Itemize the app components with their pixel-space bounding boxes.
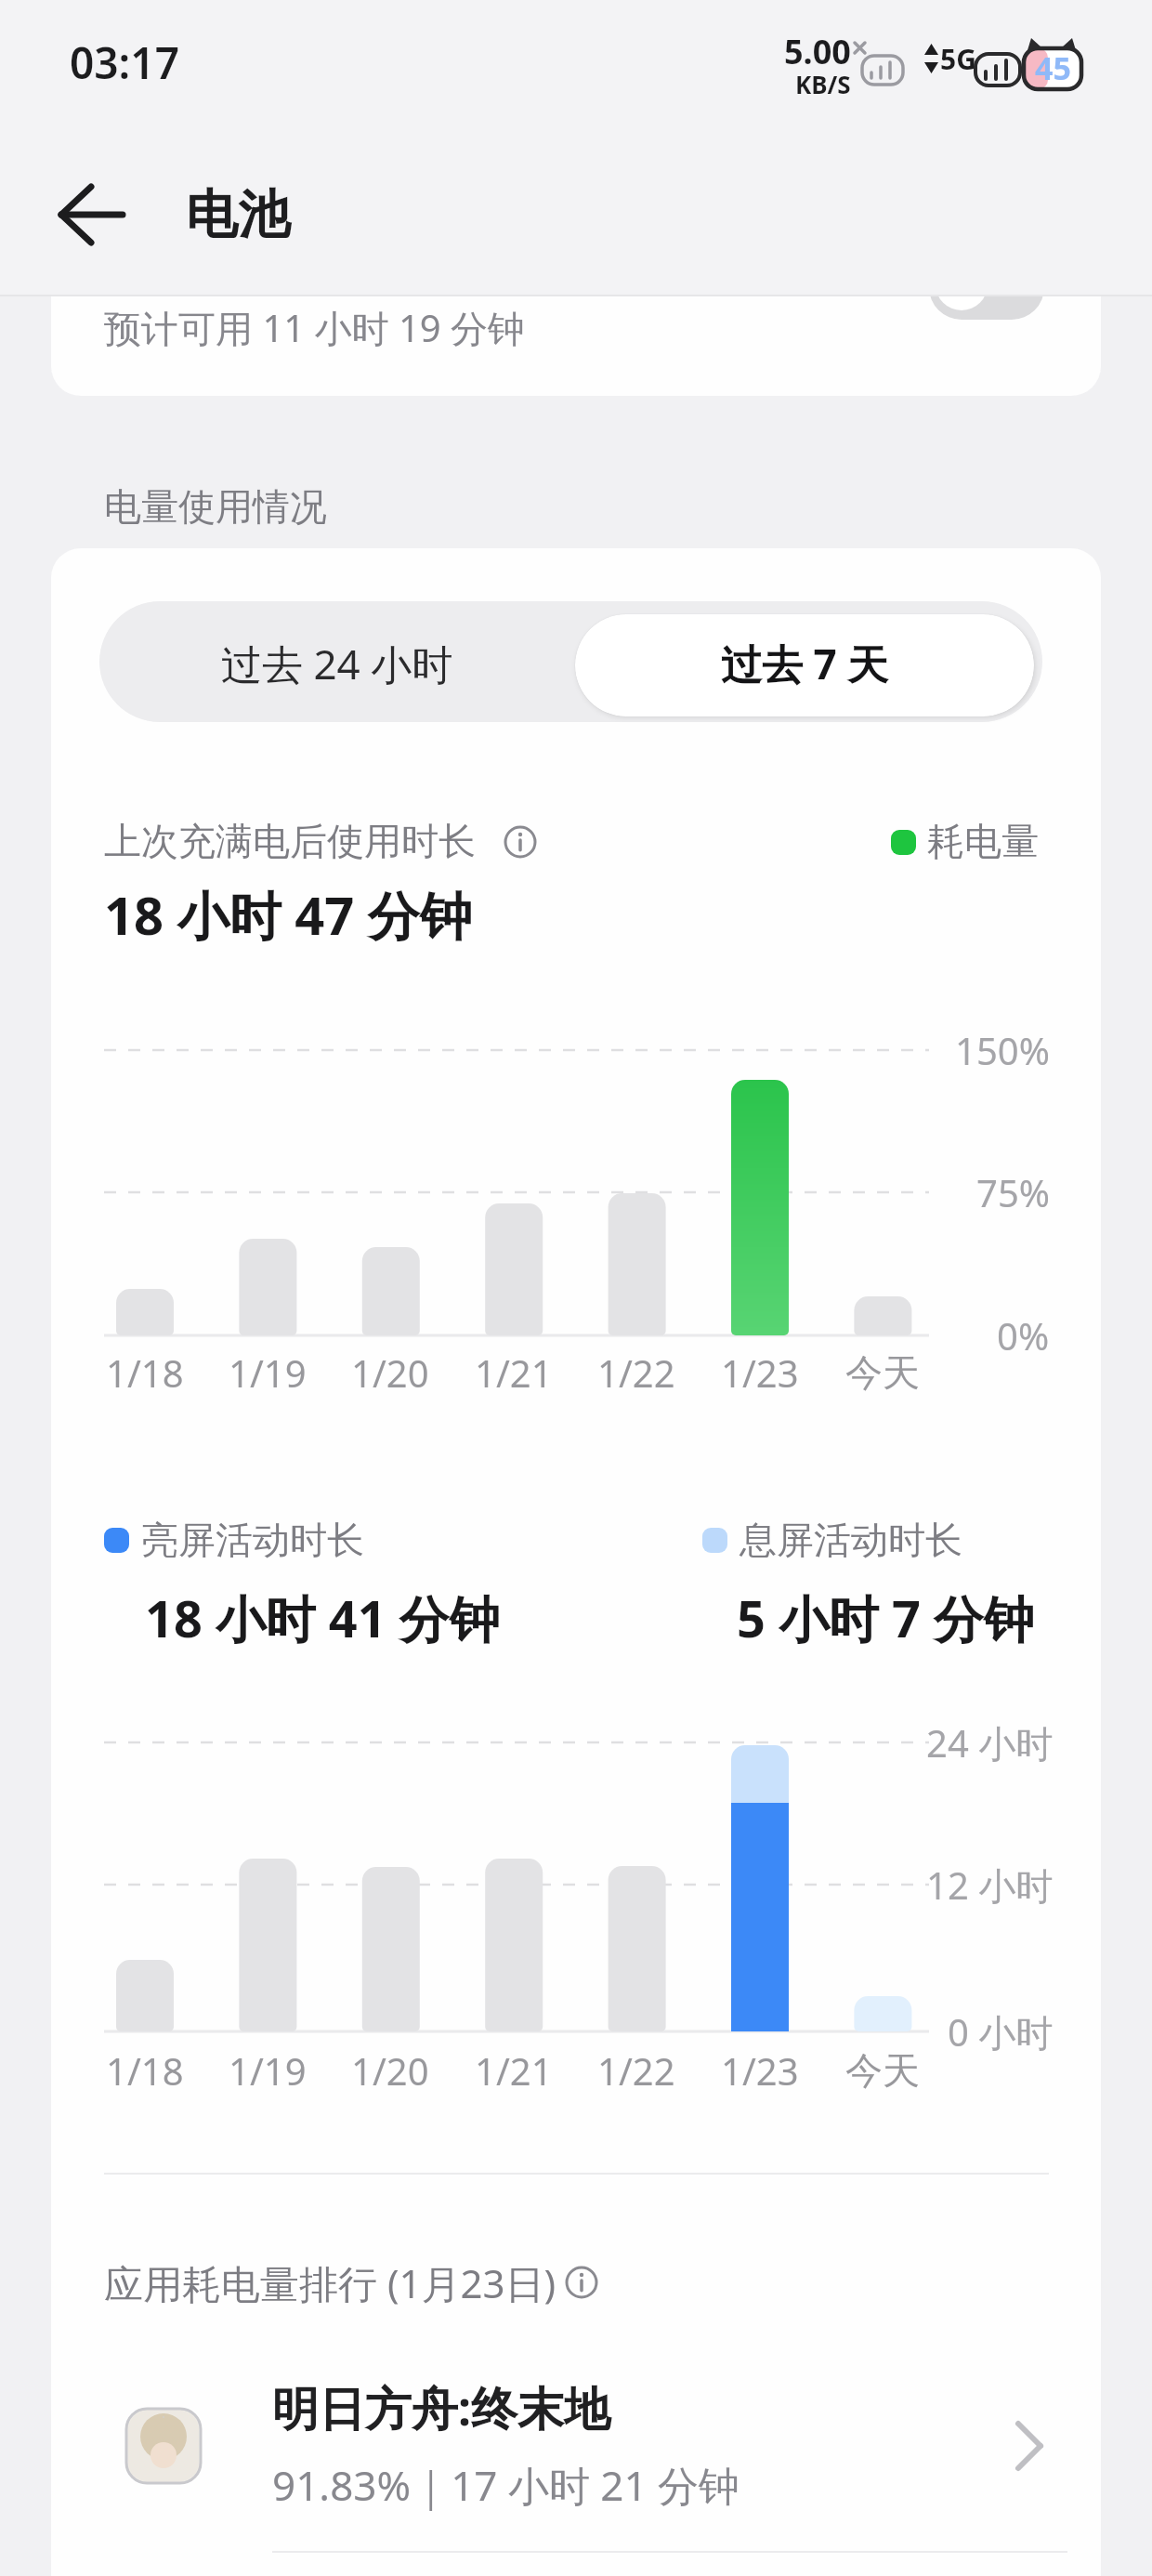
staticText: 上次充满电后使用时长: [104, 818, 476, 864]
staticText: 1/18: [106, 1347, 184, 1398]
staticText: 5.00: [784, 29, 851, 74]
staticText: 1/19: [229, 2045, 307, 2096]
staticText: 1/22: [597, 2045, 675, 2096]
staticText: 1/23: [721, 1347, 799, 1398]
staticText: 18 小时 47 分钟: [104, 879, 472, 950]
staticText: 应用耗电量排行 (1月23日): [104, 2256, 556, 2309]
staticText: 91.83%｜17 小时 21 分钟: [272, 2457, 740, 2513]
staticText: 过去 7 天: [721, 636, 889, 691]
staticText: 今天: [845, 2047, 920, 2094]
staticText: 1/19: [229, 1347, 307, 1398]
button[interactable]: [93, 2379, 1078, 2518]
staticText: 1/18: [106, 2045, 184, 2096]
staticText: 息屏活动时长: [740, 1517, 962, 1563]
staticText: 过去 24 小时: [221, 636, 453, 691]
staticText: 1/21: [475, 1347, 553, 1398]
staticText: 03:17: [70, 33, 179, 92]
button[interactable]: [99, 601, 575, 722]
staticText: 5G: [940, 40, 976, 78]
staticText: 24 小时: [926, 1717, 1054, 1768]
button[interactable]: [51, 296, 1101, 396]
staticText: 0 小时: [948, 2006, 1054, 2057]
button[interactable]: [929, 255, 1044, 320]
button[interactable]: [575, 614, 1034, 716]
staticText: 75%: [976, 1167, 1050, 1217]
staticText: 电量使用情况: [104, 483, 327, 530]
staticText: 18 小时 41 分钟: [145, 1584, 500, 1652]
staticText: 150%: [955, 1025, 1050, 1075]
staticText: 今天: [845, 1349, 920, 1396]
staticText: 亮屏活动时长: [141, 1517, 364, 1563]
staticText: 1/21: [475, 2045, 553, 2096]
staticText: 电池: [186, 182, 290, 248]
staticText: 1/20: [351, 2045, 429, 2096]
staticText: 明日方舟:终末地: [272, 2376, 611, 2439]
staticText: 1/22: [597, 1347, 675, 1398]
button[interactable]: [46, 178, 136, 253]
staticText: 5 小时 7 分钟: [737, 1584, 1034, 1652]
staticText: 45: [1035, 46, 1071, 89]
staticText: KB/S: [795, 68, 851, 100]
staticText: 1/20: [351, 1347, 429, 1398]
staticText: 1/23: [721, 2045, 799, 2096]
staticText: 耗电量: [927, 818, 1039, 864]
staticText: 0%: [997, 1310, 1050, 1360]
staticText: 12 小时: [926, 1860, 1054, 1911]
staticText: 预计可用 11 小时 19 分钟: [104, 302, 526, 353]
